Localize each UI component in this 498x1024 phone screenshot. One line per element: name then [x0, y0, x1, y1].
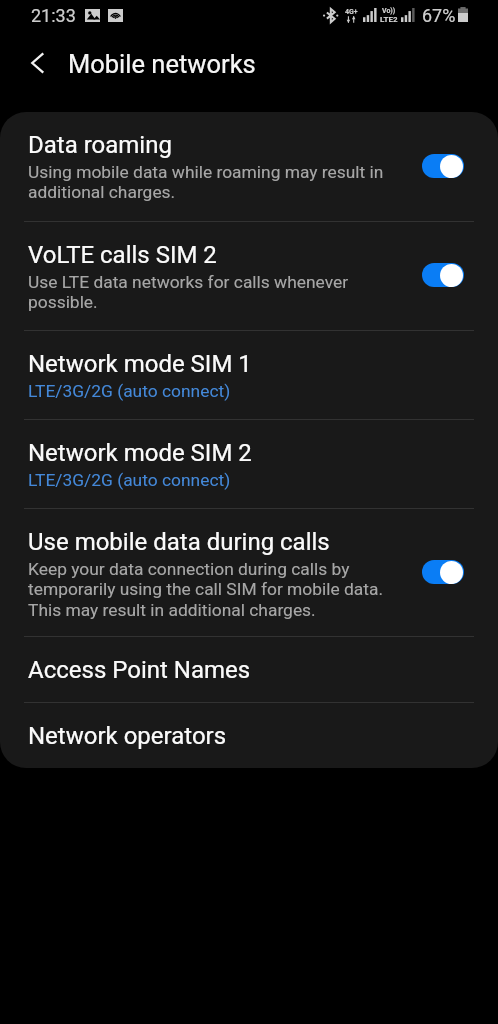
staticText: Data roaming: [28, 131, 172, 159]
button[interactable]: Network operators: [0, 703, 498, 768]
button[interactable]: Data roaming: [0, 112, 498, 221]
button[interactable]: Access Point Names: [0, 637, 498, 702]
staticText: VoLTE calls SIM 2: [28, 241, 217, 269]
button[interactable]: Use mobile data during calls: [422, 560, 464, 584]
staticText: Use mobile data during calls: [28, 528, 330, 556]
button[interactable]: Network mode SIM 1: [0, 331, 498, 419]
button[interactable]: VoLTE calls SIM 2: [422, 263, 464, 287]
staticText: Vo)): [382, 7, 396, 15]
staticText: 21:33: [31, 5, 76, 26]
button[interactable]: Network mode SIM 2: [0, 420, 498, 508]
staticText: LTE/3G/2G (auto connect): [28, 381, 231, 401]
staticText: Network mode SIM 2: [28, 439, 252, 467]
staticText: 4G+: [345, 8, 358, 16]
button[interactable]: Navigate up: [20, 45, 56, 81]
button[interactable]: Data roaming: [422, 154, 464, 178]
staticText: Mobile networks: [68, 49, 256, 79]
staticText: Using mobile data while roaming may resu…: [28, 162, 385, 203]
staticText: LTE/3G/2G (auto connect): [28, 470, 231, 490]
staticText: Network mode SIM 1: [28, 350, 252, 378]
staticText: Network operators: [28, 722, 227, 750]
button[interactable]: VoLTE calls SIM 2: [0, 222, 498, 330]
staticText: 67%: [422, 5, 456, 26]
button[interactable]: Use mobile data during calls: [0, 509, 498, 636]
staticText: Access Point Names: [28, 656, 251, 684]
staticText: LTE2: [380, 15, 398, 24]
staticText: Use LTE data networks for calls whenever…: [28, 272, 385, 313]
staticText: Keep your data connection during calls b…: [28, 559, 385, 621]
